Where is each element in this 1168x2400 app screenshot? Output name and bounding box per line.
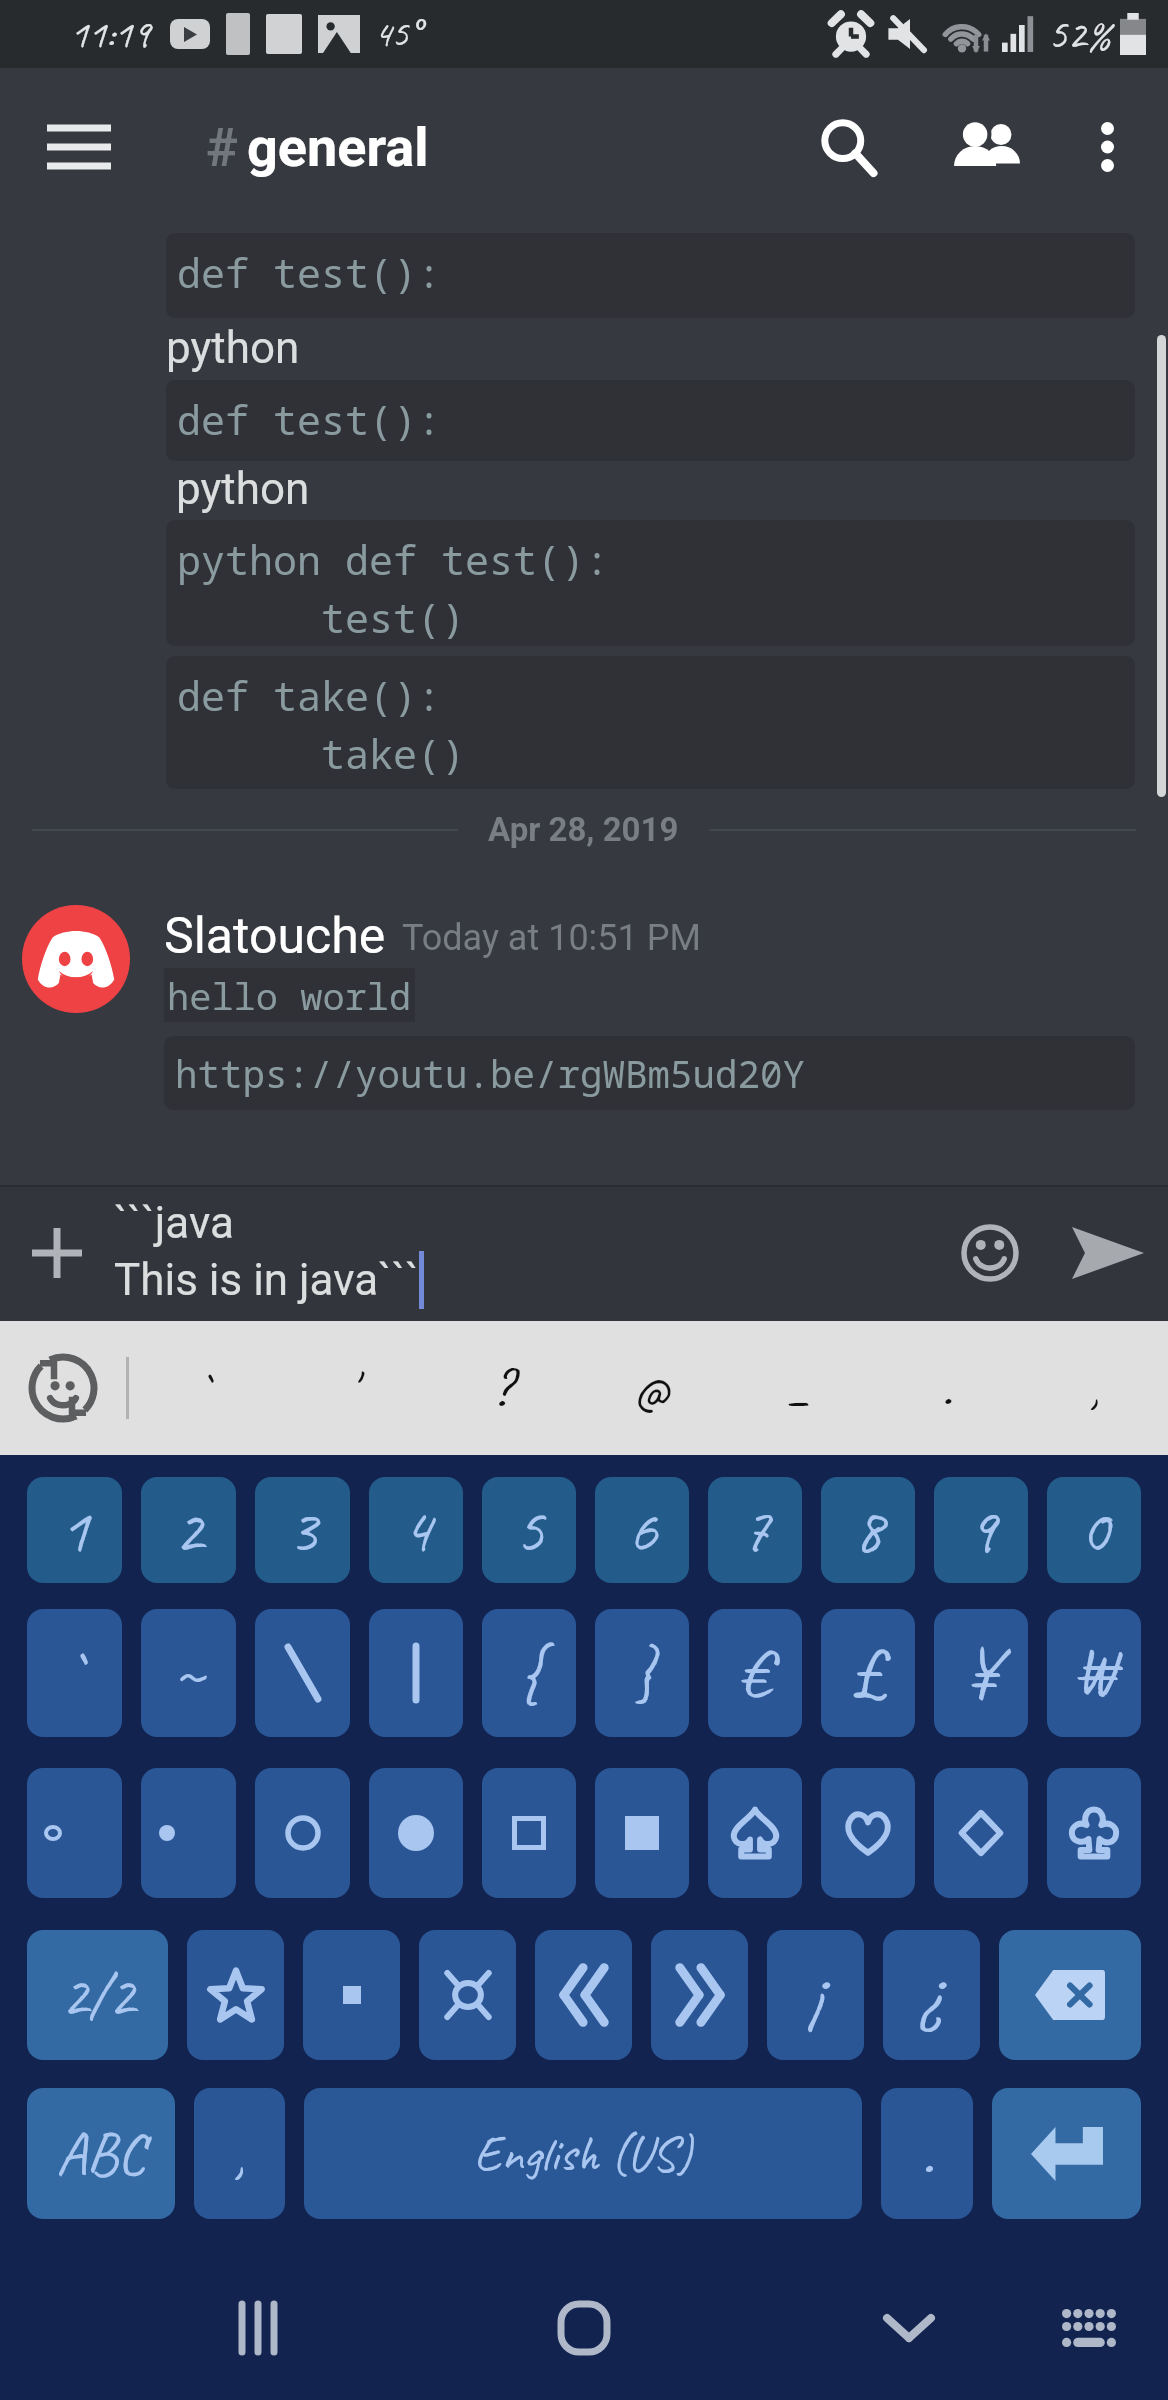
button[interactable]: Open navigation drawer	[0, 68, 158, 226]
staticText: def test():	[177, 245, 441, 299]
button[interactable]: _	[724, 1321, 872, 1455]
staticText: ?	[491, 1354, 512, 1422]
staticText: 5	[515, 1490, 544, 1571]
button[interactable]: `	[129, 1321, 278, 1455]
button[interactable]: '	[278, 1321, 427, 1455]
staticText: 8	[854, 1490, 883, 1571]
staticText: ¥	[965, 1629, 997, 1717]
staticText: ¡	[808, 1952, 823, 2038]
staticText: 45°	[374, 10, 419, 58]
staticText: ,	[1089, 1354, 1100, 1422]
button[interactable]: Change keyboard	[1029, 2250, 1149, 2400]
button[interactable]	[187, 1930, 284, 2060]
staticText: .	[941, 1354, 952, 1422]
staticText: Today at 10:51 PM	[402, 917, 701, 959]
button[interactable]	[369, 1609, 463, 1737]
button[interactable]: }	[595, 1609, 689, 1737]
button[interactable]: ₩	[1047, 1609, 1141, 1737]
staticText: ```java	[114, 1197, 234, 1249]
button[interactable]: ¡	[767, 1930, 864, 2060]
staticText: English (US)	[474, 2122, 692, 2185]
staticText: ₩	[1078, 1629, 1110, 1717]
staticText: take()	[177, 726, 465, 780]
staticText: ~	[173, 1629, 205, 1717]
button[interactable]	[141, 1768, 236, 1898]
button[interactable]: ?	[427, 1321, 576, 1455]
button[interactable]	[255, 1609, 350, 1737]
button[interactable]: Recent apps	[198, 2250, 318, 2400]
button[interactable]	[821, 1768, 915, 1898]
button[interactable]: .	[881, 2088, 973, 2219]
staticText: general	[247, 116, 429, 179]
button[interactable]	[934, 1768, 1028, 1898]
staticText: 2	[174, 1490, 203, 1571]
button[interactable]: 3	[255, 1477, 350, 1583]
staticText: 1	[60, 1490, 89, 1571]
staticText: https://youtu.be/rgWBm5ud20Y	[175, 1048, 805, 1099]
button[interactable]: ,	[1020, 1321, 1168, 1455]
button[interactable]	[255, 1768, 350, 1898]
button[interactable]: Members	[926, 68, 1046, 226]
button[interactable]: 7	[708, 1477, 802, 1583]
button[interactable]: 1	[27, 1477, 122, 1583]
button[interactable]: Emoji picker	[932, 1185, 1048, 1321]
button[interactable]: Add attachment	[0, 1185, 114, 1321]
button[interactable]: Switch to emoji	[0, 1321, 126, 1455]
button[interactable]: £	[821, 1609, 915, 1737]
button[interactable]: Search	[788, 68, 908, 226]
staticText: €	[739, 1629, 771, 1717]
button[interactable]	[27, 1768, 122, 1898]
button[interactable]: 5	[482, 1477, 576, 1583]
button[interactable]	[419, 1930, 516, 2060]
button[interactable]: Enter	[992, 2088, 1141, 2219]
staticText: {	[517, 1629, 541, 1717]
staticText: python	[166, 322, 300, 374]
button[interactable]: {	[482, 1609, 576, 1737]
button[interactable]: 4	[369, 1477, 463, 1583]
staticText: _	[786, 1354, 811, 1422]
button[interactable]: €	[708, 1609, 802, 1737]
button[interactable]: 0	[1047, 1477, 1141, 1583]
button[interactable]: 6	[595, 1477, 689, 1583]
button[interactable]: ,	[194, 2088, 285, 2219]
staticText: 6	[628, 1490, 657, 1571]
button[interactable]: Home	[524, 2250, 644, 2400]
button[interactable]: 8	[821, 1477, 915, 1583]
button[interactable]	[535, 1930, 632, 2060]
button[interactable]: Backspace	[999, 1930, 1141, 2060]
button[interactable]: 2/2	[27, 1930, 168, 2060]
button[interactable]: ~	[141, 1609, 236, 1737]
button[interactable]	[708, 1768, 802, 1898]
staticText: test()	[177, 590, 465, 644]
button[interactable]	[651, 1930, 748, 2060]
button[interactable]: ¿	[883, 1930, 980, 2060]
button[interactable]: English (US)	[304, 2088, 862, 2219]
button[interactable]: @	[576, 1321, 724, 1455]
staticText: 7	[741, 1490, 770, 1571]
button[interactable]: #	[206, 68, 429, 226]
staticText: @	[633, 1354, 668, 1422]
staticText: ¿	[919, 1952, 945, 2038]
button[interactable]	[303, 1930, 400, 2060]
button[interactable]: .	[872, 1321, 1020, 1455]
button[interactable]: `	[27, 1609, 122, 1737]
button[interactable]: 2	[141, 1477, 236, 1583]
staticText: python	[176, 463, 310, 515]
staticText: def take():	[177, 668, 441, 722]
button[interactable]	[482, 1768, 576, 1898]
button[interactable]	[369, 1768, 463, 1898]
staticText: 0	[1080, 1490, 1109, 1571]
staticText: 9	[967, 1490, 996, 1571]
button[interactable]: Hide keyboard	[849, 2250, 969, 2400]
staticText: python def test():	[177, 532, 609, 586]
button[interactable]: ABC	[27, 2088, 175, 2219]
button[interactable]	[1047, 1768, 1141, 1898]
button[interactable]	[595, 1768, 689, 1898]
staticText: .	[921, 2115, 934, 2193]
button[interactable]: More options	[1048, 68, 1166, 226]
button[interactable]: Send message	[1048, 1185, 1168, 1321]
button[interactable]: ¥	[934, 1609, 1028, 1737]
staticText: `	[62, 1629, 87, 1717]
staticText: hello world	[167, 970, 412, 1020]
button[interactable]: 9	[934, 1477, 1028, 1583]
